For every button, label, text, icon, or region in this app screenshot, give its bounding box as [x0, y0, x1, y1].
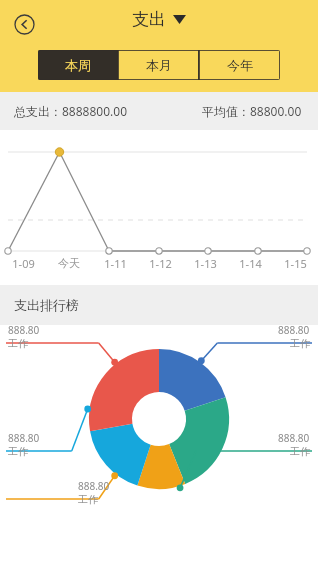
button[interactable]: 888.80 — [8, 323, 40, 350]
staticText: 总支出：8888800.00 — [14, 103, 127, 119]
button[interactable]: 888.80 — [78, 479, 110, 506]
staticText: 1-11 — [104, 256, 127, 271]
button[interactable]: 888.80 — [8, 431, 40, 458]
staticText: 今年 — [227, 57, 253, 73]
staticText: 本周 — [65, 57, 91, 73]
staticText: 工作 — [8, 337, 28, 350]
button[interactable]: Back — [8, 8, 40, 40]
staticText: 1-14 — [239, 256, 262, 271]
button[interactable]: 支出 — [132, 9, 186, 30]
staticText: 888.80 — [8, 323, 40, 337]
staticText: 平均值：88800.00 — [202, 103, 302, 119]
staticText: 工作 — [290, 337, 310, 350]
staticText: 支出排行榜 — [14, 297, 79, 313]
button[interactable]: 本月 — [118, 50, 199, 80]
staticText: 888.80 — [78, 479, 110, 493]
staticText: 工作 — [290, 445, 310, 458]
staticText: 1-12 — [149, 256, 172, 271]
staticText: 支出 — [132, 9, 166, 30]
staticText: 1-13 — [194, 256, 217, 271]
staticText: 今天 — [58, 256, 80, 270]
button[interactable]: 888.80 — [278, 323, 310, 350]
button[interactable]: 本周 — [38, 50, 118, 80]
staticText: 888.80 — [8, 431, 40, 445]
button[interactable]: 888.80 — [278, 431, 310, 458]
staticText: 本月 — [146, 57, 172, 73]
staticText: 工作 — [78, 493, 98, 506]
staticText: 888.80 — [278, 323, 310, 337]
staticText: 1-15 — [284, 256, 307, 271]
staticText: 888.80 — [278, 431, 310, 445]
staticText: 1-09 — [12, 256, 35, 271]
button[interactable]: 今年 — [199, 50, 280, 80]
staticText: 工作 — [8, 445, 28, 458]
